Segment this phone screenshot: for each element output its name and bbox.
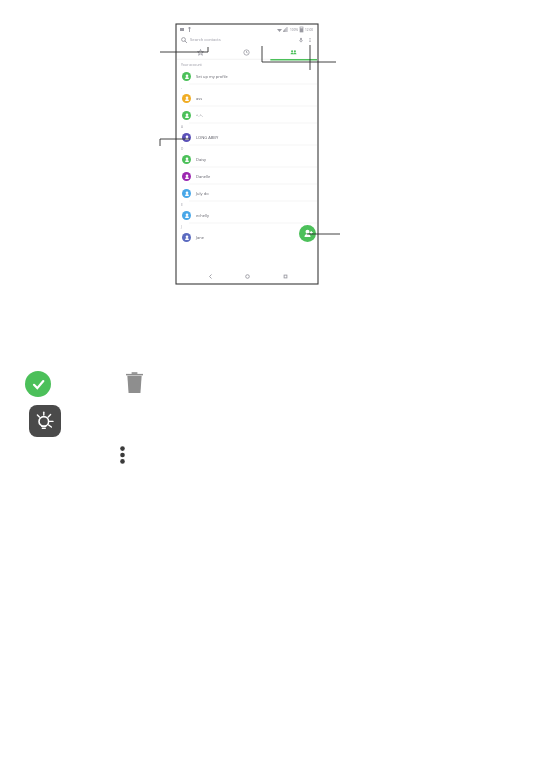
button[interactable]: Add contact [299,225,316,242]
button[interactable]: Tip [29,405,61,437]
button[interactable]: Jane [177,229,317,245]
button[interactable]: Confirm [25,371,51,397]
staticText: 100% [290,28,299,32]
button[interactable]: Favourites [177,46,223,59]
staticText: July do [196,191,209,196]
button[interactable]: Search [181,34,313,46]
staticText: Danelle [196,174,211,179]
button[interactable]: Back [205,271,215,281]
button[interactable]: Danelle [177,168,317,184]
staticText: ass [196,96,203,101]
staticText: 12:00 [305,28,314,32]
button[interactable]: ^-^- [177,107,317,123]
other: Voice search [298,37,304,43]
staticText: Your account [181,62,202,67]
button[interactable]: Contacts [270,46,317,59]
button[interactable]: More options [117,445,128,465]
staticText: Set up my profile [196,74,228,79]
button[interactable]: Recent apps [280,271,290,281]
button[interactable]: Daisy [177,151,317,167]
button[interactable]: July do [177,185,317,201]
button[interactable]: Set up my profile [177,68,317,84]
button[interactable]: echelly [177,207,317,223]
staticText: J [181,225,182,229]
button[interactable]: ass [177,90,317,106]
staticText: - [181,86,183,90]
staticText: E [181,203,183,207]
button[interactable]: Recents [223,46,270,59]
button[interactable]: More options [307,37,313,43]
staticText: A [181,125,184,129]
button[interactable]: LONG ABBY [177,129,317,145]
staticText: Search contacts [190,37,221,43]
staticText: LONG ABBY [196,135,219,140]
staticText: D [181,147,184,151]
staticText: ^-^- [196,113,204,118]
other: Search [181,37,187,43]
staticText: echelly [196,213,210,218]
staticText: Jane [196,235,205,240]
button[interactable]: Home [242,271,252,281]
staticText: Daisy [196,157,207,162]
button[interactable]: Delete [126,372,143,393]
